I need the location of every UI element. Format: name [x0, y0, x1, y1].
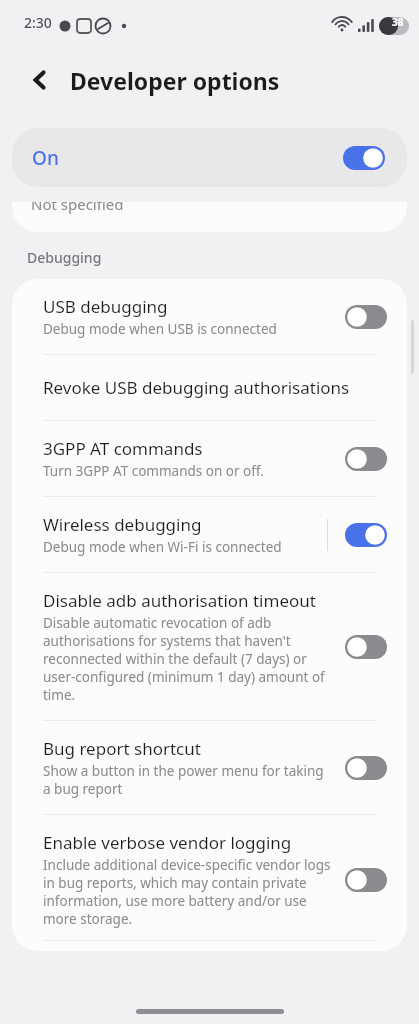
staticText: USB debugging	[43, 295, 168, 318]
staticText: Disable adb authorisation timeout	[43, 589, 316, 612]
staticText: Revoke USB debugging authorisations	[43, 376, 350, 399]
staticText: Debugging	[27, 248, 102, 267]
staticText: Wireless debugging	[43, 513, 202, 536]
staticText: Debug mode when Wi-Fi is connected	[43, 538, 282, 556]
staticText: Turn 3GPP AT commands on or off.	[43, 462, 264, 480]
staticText: Enable verbose vendor logging	[43, 831, 292, 854]
button[interactable]: 3GPP AT commands	[12, 421, 407, 496]
button[interactable]: Disable adb authorisation timeout	[12, 573, 407, 720]
staticText: 3GPP AT commands	[43, 437, 203, 460]
button[interactable]: 3GPP AT commands	[341, 443, 391, 475]
button[interactable]: USB debugging	[341, 301, 391, 333]
staticText: On	[32, 145, 59, 171]
button[interactable]: Revoke USB debugging authorisations	[12, 355, 407, 420]
button[interactable]: Wireless debugging	[12, 497, 407, 572]
button[interactable]: Enable verbose vendor logging	[12, 815, 407, 940]
button[interactable]: Enable verbose vendor logging	[341, 864, 391, 896]
staticText: Disable automatic revocation of adb auth…	[43, 614, 331, 704]
button[interactable]: Bug report shortcut	[341, 752, 391, 784]
staticText: Debug mode when USB is connected	[43, 320, 277, 338]
button[interactable]: Bug report shortcut	[12, 721, 407, 814]
button[interactable]: Disable adb authorisation timeout	[341, 631, 391, 663]
button[interactable]: Wireless debugging	[341, 519, 391, 551]
staticText: Show a button in the power menu for taki…	[43, 762, 331, 798]
button[interactable]: USB debugging	[12, 279, 407, 354]
staticText: 2:30	[24, 13, 52, 32]
staticText: 38	[392, 15, 404, 29]
button[interactable]: Back	[22, 62, 58, 98]
staticText: Include additional device-specific vendo…	[43, 856, 331, 928]
staticText: Bug report shortcut	[43, 737, 201, 760]
staticText: Not specified	[31, 202, 124, 214]
staticText: Developer options	[70, 65, 280, 96]
button[interactable]: On	[12, 128, 407, 187]
